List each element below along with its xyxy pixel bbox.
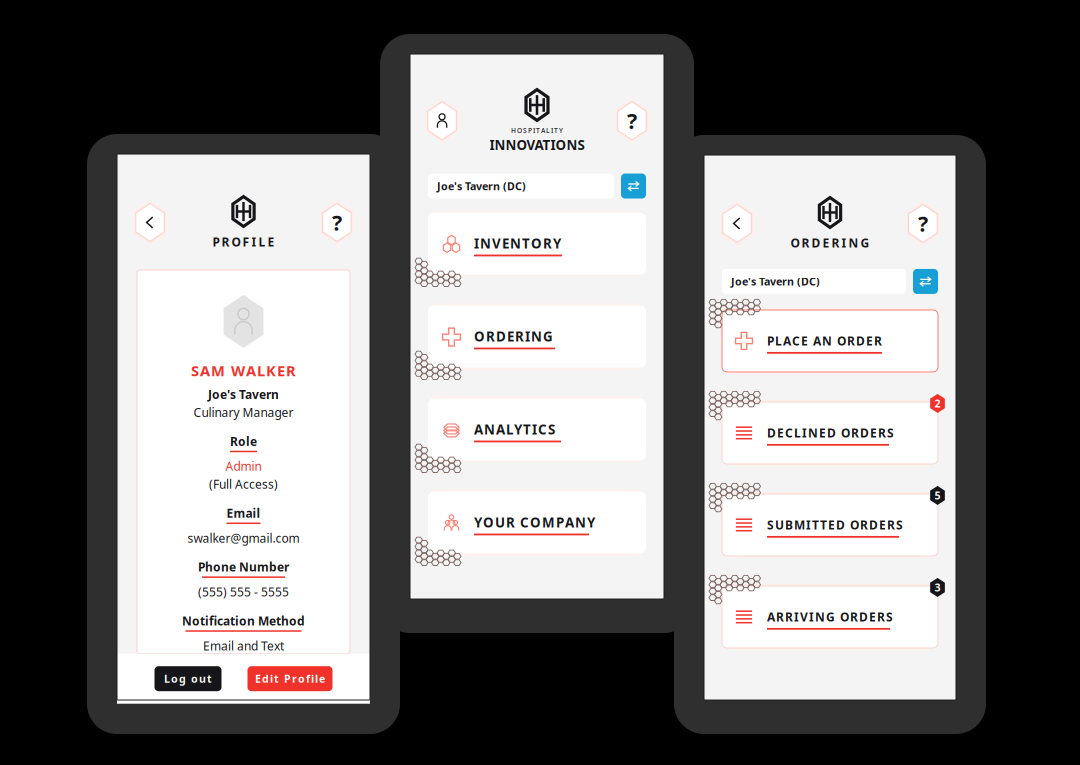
button[interactable]: Switch location <box>621 174 646 199</box>
staticText: O R D E R I N G <box>790 235 869 251</box>
staticText: Joe's Tavern (DC) <box>437 179 526 193</box>
staticText: (555) 555 - 5555 <box>198 584 289 600</box>
staticText: 5 <box>934 488 940 503</box>
staticText: S A M W A L K E R <box>191 361 296 380</box>
button[interactable]: S U B M I T T E D O R D E R S <box>722 496 938 558</box>
staticText: 3 <box>934 580 940 595</box>
staticText: Admin <box>225 458 261 474</box>
button[interactable]: Help <box>903 200 943 246</box>
button[interactable]: A R R I V I N G O R D E R S <box>722 588 938 650</box>
button[interactable]: Profile <box>422 98 462 144</box>
staticText: E d i t P r o f i l e <box>255 672 325 686</box>
button[interactable]: L o g o u t <box>154 666 221 691</box>
staticText: Notification Method <box>182 613 305 629</box>
staticText: Role <box>230 433 257 449</box>
staticText: A R R I V I N G O R D E R S <box>767 609 893 625</box>
staticText: 2 <box>934 396 940 411</box>
staticText: Joe's Tavern <box>208 386 279 402</box>
staticText: O R D E R I N G <box>474 328 553 345</box>
staticText: ? <box>918 209 928 238</box>
button[interactable]: Switch location <box>913 269 938 294</box>
staticText: S U B M I T T E D O R D E R S <box>767 517 903 533</box>
button[interactable]: Help <box>317 199 357 245</box>
button[interactable]: Back <box>717 200 757 246</box>
staticText: P L A C E A N O R D E R <box>767 333 882 349</box>
staticText: Email and Text <box>203 638 284 654</box>
staticText: Phone Number <box>198 559 289 575</box>
staticText: ? <box>627 107 637 135</box>
button[interactable]: O R D E R I N G <box>428 308 646 370</box>
button[interactable]: Back <box>130 199 170 245</box>
staticText: L o g o u t <box>164 672 212 686</box>
button[interactable]: P L A C E A N O R D E R <box>722 312 938 374</box>
staticText: P R O F I L E <box>212 234 274 250</box>
staticText: D E C L I N E D O R D E R S <box>767 425 894 441</box>
staticText: swalker@gmail.com <box>187 530 299 546</box>
staticText: INNOVATIONS <box>489 136 584 154</box>
staticText: Joe's Tavern (DC) <box>731 274 820 289</box>
staticText: Y O U R C O M P A N Y <box>474 514 595 531</box>
button[interactable]: A N A L Y T I C S <box>428 401 646 463</box>
staticText: (Full Access) <box>209 476 278 492</box>
button[interactable]: Help <box>612 98 652 144</box>
button[interactable]: Y O U R C O M P A N Y <box>428 494 646 556</box>
staticText: ? <box>332 208 342 237</box>
button[interactable]: D E C L I N E D O R D E R S <box>722 404 938 466</box>
staticText: Email <box>226 505 260 521</box>
staticText: Culinary Manager <box>193 404 293 420</box>
button[interactable]: E d i t P r o f i l e <box>247 666 332 691</box>
staticText: I N V E N T O R Y <box>474 235 561 252</box>
button[interactable]: I N V E N T O R Y <box>428 215 646 277</box>
staticText: A N A L Y T I C S <box>474 421 555 438</box>
staticText: H O S P I T A L I T Y <box>511 126 563 135</box>
